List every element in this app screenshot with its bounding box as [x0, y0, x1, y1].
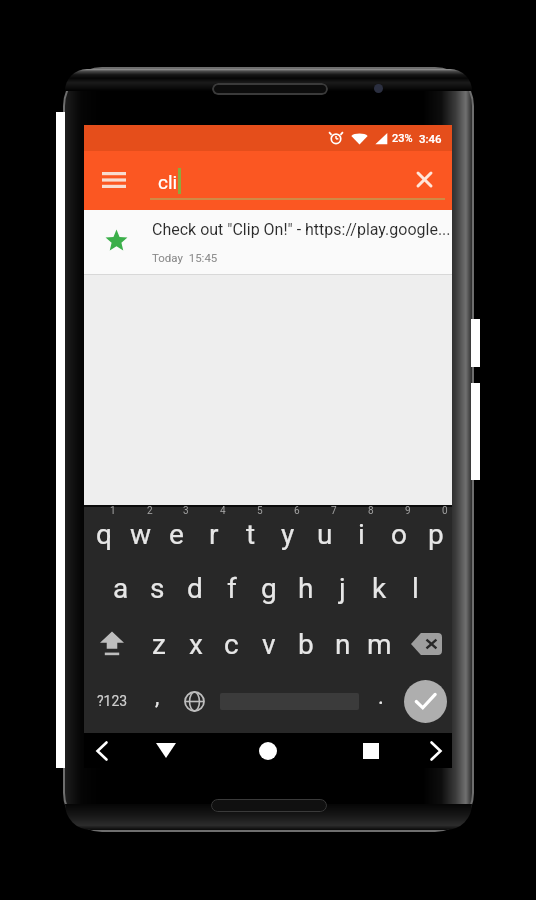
button[interactable]: ,	[139, 673, 176, 729]
staticText: s	[150, 572, 165, 605]
button[interactable]: Home	[244, 733, 292, 768]
button[interactable]: Enter	[397, 673, 453, 729]
staticText: e	[169, 518, 184, 551]
staticText: a	[113, 572, 129, 605]
staticText: o	[391, 518, 407, 551]
button[interactable]: Hide keyboard	[142, 733, 190, 768]
staticText: 3:46	[419, 132, 442, 145]
staticText: r	[209, 518, 219, 551]
button[interactable]: q	[85, 504, 122, 560]
button[interactable]: Recent apps	[347, 733, 395, 768]
staticText: q	[96, 518, 112, 551]
button[interactable]: k	[361, 560, 398, 616]
button[interactable]: Change input language	[176, 673, 213, 729]
button[interactable]: l	[397, 560, 434, 616]
staticText: .	[378, 684, 384, 710]
staticText: w	[130, 518, 152, 551]
button[interactable]: y	[269, 504, 306, 560]
button[interactable]: z	[140, 616, 177, 672]
button[interactable]: Check out "Clip On!" - https://play.goog…	[84, 210, 452, 275]
button[interactable]: f	[213, 560, 250, 616]
button[interactable]: m	[361, 616, 398, 672]
staticText: u	[317, 518, 333, 551]
staticText: k	[372, 572, 387, 605]
button[interactable]: d	[176, 560, 213, 616]
button[interactable]: b	[287, 616, 324, 672]
button[interactable]: .	[362, 673, 399, 729]
button[interactable]: i	[343, 504, 380, 560]
staticText: i	[358, 518, 365, 551]
staticText: 5	[257, 505, 263, 517]
staticText: 1	[110, 505, 116, 517]
staticText: z	[152, 628, 166, 661]
staticText: m	[367, 628, 392, 661]
staticText: ?123	[97, 693, 128, 709]
staticText: p	[428, 518, 444, 551]
button[interactable]: Menu	[89, 155, 138, 204]
staticText: 23%	[392, 132, 413, 145]
staticText: b	[298, 628, 314, 661]
staticText: Check out "Clip On!" - https://play.goog…	[152, 220, 451, 239]
staticText: l	[412, 572, 419, 605]
staticText: h	[298, 572, 314, 605]
staticText: ,	[155, 684, 160, 710]
staticText: 6	[294, 505, 300, 517]
staticText: v	[262, 628, 276, 661]
button[interactable]: Backspace	[399, 616, 454, 672]
button[interactable]: h	[287, 560, 324, 616]
button[interactable]: n	[324, 616, 361, 672]
staticText: j	[339, 572, 346, 605]
staticText: 2	[147, 505, 153, 517]
button[interactable]: c	[213, 616, 250, 672]
staticText: y	[281, 518, 295, 551]
staticText: Today 15:45	[152, 251, 218, 264]
button[interactable]: p	[417, 504, 454, 560]
staticText: cli	[158, 171, 178, 193]
staticText: 4	[220, 505, 226, 517]
button[interactable]: j	[324, 560, 361, 616]
button[interactable]: u	[306, 504, 343, 560]
staticText: c	[224, 628, 239, 661]
button[interactable]: e	[158, 504, 195, 560]
button[interactable]: ?123	[84, 673, 140, 729]
button[interactable]: Space	[214, 673, 364, 729]
staticText: n	[335, 628, 351, 661]
button[interactable]: v	[250, 616, 287, 672]
staticText: g	[261, 572, 277, 605]
staticText: 8	[368, 505, 374, 517]
button[interactable]: Shift	[84, 616, 139, 672]
button[interactable]: a	[102, 560, 139, 616]
staticText: d	[187, 572, 203, 605]
button[interactable]: t	[232, 504, 269, 560]
button[interactable]: o	[380, 504, 417, 560]
button[interactable]: Previous	[78, 733, 126, 768]
button[interactable]: w	[122, 504, 159, 560]
button[interactable]: r	[195, 504, 232, 560]
button[interactable]: s	[139, 560, 176, 616]
staticText: 7	[331, 505, 337, 517]
staticText: t	[246, 518, 256, 551]
button[interactable]: g	[250, 560, 287, 616]
staticText: 9	[405, 505, 411, 517]
staticText: f	[227, 572, 237, 605]
button[interactable]: Next	[412, 733, 460, 768]
button[interactable]: x	[177, 616, 214, 672]
staticText: 3	[183, 505, 189, 517]
button[interactable]: Clear search	[400, 155, 449, 204]
staticText: 0	[442, 505, 448, 517]
staticText: x	[189, 628, 203, 661]
